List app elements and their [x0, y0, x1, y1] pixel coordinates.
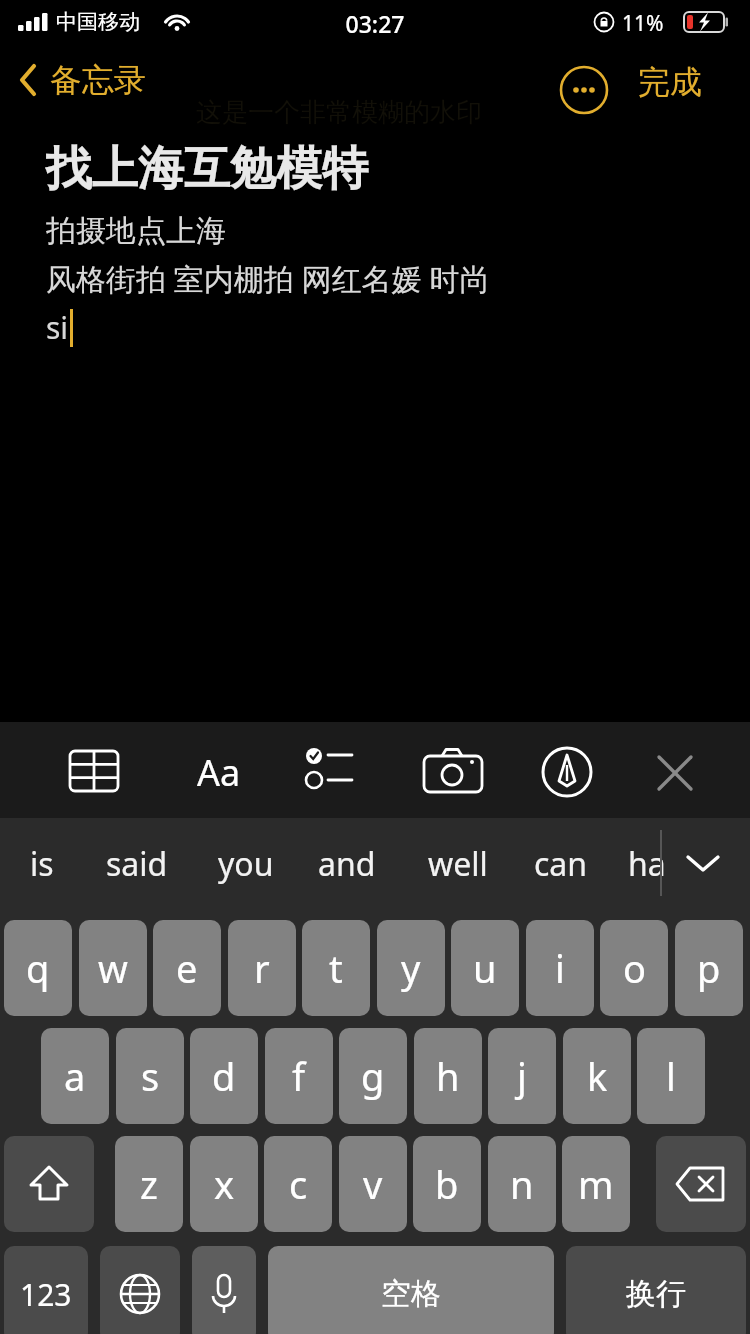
button[interactable]: n [488, 1136, 556, 1232]
staticText: 空格 [381, 1275, 441, 1313]
button[interactable]: u [451, 920, 519, 1016]
staticText: 中国移动 [56, 9, 140, 35]
button[interactable]: Dictation [192, 1246, 256, 1334]
staticText: 完成 [638, 62, 702, 102]
staticText: 03:27 [0, 8, 750, 39]
button[interactable]: Switch keyboard language [100, 1246, 180, 1334]
button[interactable]: v [339, 1136, 407, 1232]
staticText: p [697, 942, 721, 994]
button[interactable]: t [302, 920, 370, 1016]
button[interactable]: q [4, 920, 72, 1016]
button[interactable]: can [528, 834, 594, 894]
staticText: Aa [197, 748, 241, 796]
staticText: e [176, 942, 198, 994]
button[interactable]: 123 [4, 1246, 88, 1334]
staticText: z [140, 1158, 158, 1210]
staticText: said [106, 842, 168, 886]
staticText: ha [628, 842, 666, 886]
button[interactable]: w [79, 920, 147, 1016]
staticText: l [666, 1050, 676, 1102]
button[interactable]: Camera [424, 746, 484, 796]
staticText: c [289, 1158, 308, 1210]
button[interactable]: Markup [542, 746, 602, 796]
button[interactable]: Text format [188, 748, 250, 796]
staticText: n [510, 1158, 534, 1210]
button[interactable]: r [228, 920, 296, 1016]
button[interactable]: ha [622, 834, 672, 894]
staticText: well [428, 842, 488, 886]
staticText: j [517, 1050, 527, 1102]
staticText: s [141, 1050, 160, 1102]
staticText: 找上海互勉模特 [46, 140, 368, 198]
staticText: can [534, 842, 588, 886]
button[interactable]: g [339, 1028, 407, 1124]
button[interactable]: and [312, 834, 382, 894]
staticText: w [98, 942, 128, 994]
button[interactable]: Checklist [306, 746, 366, 796]
button[interactable]: d [190, 1028, 258, 1124]
staticText: q [26, 942, 50, 994]
staticText: is [30, 842, 54, 886]
button[interactable]: More options [556, 62, 612, 118]
staticText: f [292, 1050, 306, 1102]
button[interactable]: h [414, 1028, 482, 1124]
button[interactable]: l [637, 1028, 705, 1124]
button[interactable]: j [488, 1028, 556, 1124]
button[interactable]: Collapse suggestions [676, 840, 730, 888]
staticText: h [436, 1050, 460, 1102]
staticText: o [623, 942, 646, 994]
staticText: y [401, 942, 421, 994]
staticText: si [46, 307, 69, 348]
button[interactable]: s [116, 1028, 184, 1124]
button[interactable]: Shift [4, 1136, 94, 1232]
button[interactable]: 完成 [630, 58, 710, 106]
staticText: 这是一个非常模糊的水印 [196, 96, 482, 129]
staticText: g [361, 1050, 385, 1102]
staticText: 11% [622, 9, 664, 38]
staticText: i [555, 942, 565, 994]
button[interactable]: f [265, 1028, 333, 1124]
button[interactable]: k [563, 1028, 631, 1124]
button[interactable]: you [212, 834, 280, 894]
staticText: a [64, 1050, 86, 1102]
button[interactable]: Hide keyboard [650, 748, 700, 798]
staticText: and [318, 842, 376, 886]
button[interactable]: y [377, 920, 445, 1016]
button[interactable]: c [264, 1136, 332, 1232]
button[interactable]: m [562, 1136, 630, 1232]
button[interactable]: 备忘录 [10, 56, 154, 104]
button[interactable]: o [600, 920, 668, 1016]
button[interactable]: z [115, 1136, 183, 1232]
staticText: 拍摄地点上海 [46, 212, 226, 250]
button[interactable]: well [422, 834, 494, 894]
button[interactable]: 换行 [566, 1246, 746, 1334]
button[interactable]: Insert table [70, 746, 130, 796]
staticText: b [435, 1158, 459, 1210]
staticText: you [218, 842, 274, 886]
staticText: x [214, 1158, 235, 1210]
button[interactable]: 空格 [268, 1246, 554, 1334]
button[interactable]: a [41, 1028, 109, 1124]
staticText: t [329, 942, 343, 994]
button[interactable]: b [413, 1136, 481, 1232]
staticText: 123 [20, 1274, 72, 1315]
staticText: m [578, 1158, 614, 1210]
staticText: d [212, 1050, 236, 1102]
staticText: 备忘录 [50, 60, 146, 100]
button[interactable]: Backspace [656, 1136, 746, 1232]
button[interactable]: is [24, 834, 60, 894]
staticText: k [587, 1050, 608, 1102]
staticText: r [254, 942, 270, 994]
button[interactable]: x [190, 1136, 258, 1232]
button[interactable]: i [526, 920, 594, 1016]
staticText: 风格街拍 室内棚拍 网红名媛 时尚 [46, 258, 490, 299]
staticText: 换行 [626, 1275, 686, 1313]
button[interactable]: said [100, 834, 174, 894]
staticText: u [473, 942, 497, 994]
staticText: v [363, 1158, 383, 1210]
button[interactable]: e [153, 920, 221, 1016]
button[interactable]: p [675, 920, 743, 1016]
